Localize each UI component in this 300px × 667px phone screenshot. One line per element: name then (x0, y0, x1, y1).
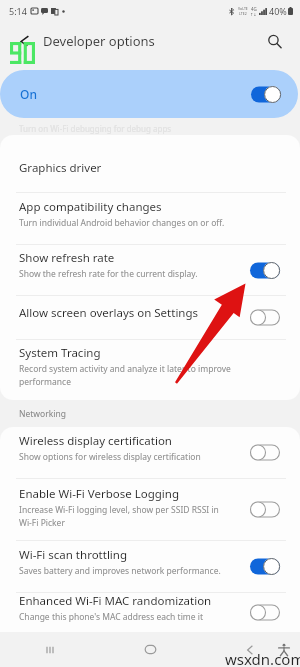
button[interactable]: Wireless display certification (0, 427, 300, 478)
staticText: wsxdn.com (225, 649, 300, 667)
staticText: Networking (19, 408, 66, 420)
staticText: VoLTE (238, 6, 248, 11)
staticText: Turn individual Android behavior changes… (19, 217, 225, 229)
button[interactable]: Accessibility (274, 640, 294, 660)
staticText: Enable Wi-Fi Verbose Logging (19, 486, 179, 502)
button[interactable]: Recent apps (0, 632, 100, 667)
button[interactable]: Enable Wi-Fi Verbose Logging (0, 479, 300, 540)
button[interactable]: Home (100, 632, 200, 667)
staticText: System Tracing (19, 345, 101, 361)
staticText: ↑↓ (250, 12, 257, 17)
button[interactable]: System Tracing (0, 340, 300, 400)
staticText: 5:14 (9, 5, 27, 17)
staticText: Wi-Fi scan throttling (19, 547, 128, 563)
staticText: Wireless display certification (19, 433, 172, 449)
staticText: App compatibility changes (19, 199, 162, 215)
button[interactable]: Navigate up (6, 23, 43, 60)
staticText: Graphics driver (19, 160, 102, 176)
button[interactable]: Wi-Fi scan throttling (0, 541, 300, 592)
staticText: 4G (251, 6, 257, 12)
staticText: Enhanced Wi-Fi MAC randomization (19, 593, 212, 609)
staticText: Saves battery and improves network perfo… (19, 565, 221, 577)
staticText: Change this phone's MAC address each tim… (19, 611, 204, 622)
button[interactable]: On (0, 70, 298, 118)
staticText: On (20, 86, 37, 102)
staticText: Increase Wi-Fi logging level, show per S… (19, 504, 219, 529)
staticText: Show options for wireless display certif… (19, 451, 201, 463)
staticText: Record system activity and analyze it la… (19, 363, 231, 388)
button[interactable]: Show refresh rate (0, 245, 300, 295)
button[interactable]: Back (200, 632, 300, 667)
button[interactable]: Search (258, 25, 290, 57)
button[interactable]: Allow screen overlays on Settings (0, 296, 300, 339)
staticText: Show the refresh rate for the current di… (19, 268, 198, 280)
button[interactable]: App compatibility changes (0, 193, 300, 244)
staticText: LTE2 (239, 11, 247, 16)
staticText: Developer options (43, 32, 155, 50)
staticText: Turn on Wi-Fi debugging for debug apps (19, 123, 172, 134)
staticText: Allow screen overlays on Settings (19, 305, 199, 321)
staticText: Show refresh rate (19, 250, 115, 266)
staticText: 40% (269, 5, 287, 17)
button[interactable]: Enhanced Wi-Fi MAC randomization (0, 593, 300, 632)
button[interactable]: Graphics driver (0, 135, 300, 192)
